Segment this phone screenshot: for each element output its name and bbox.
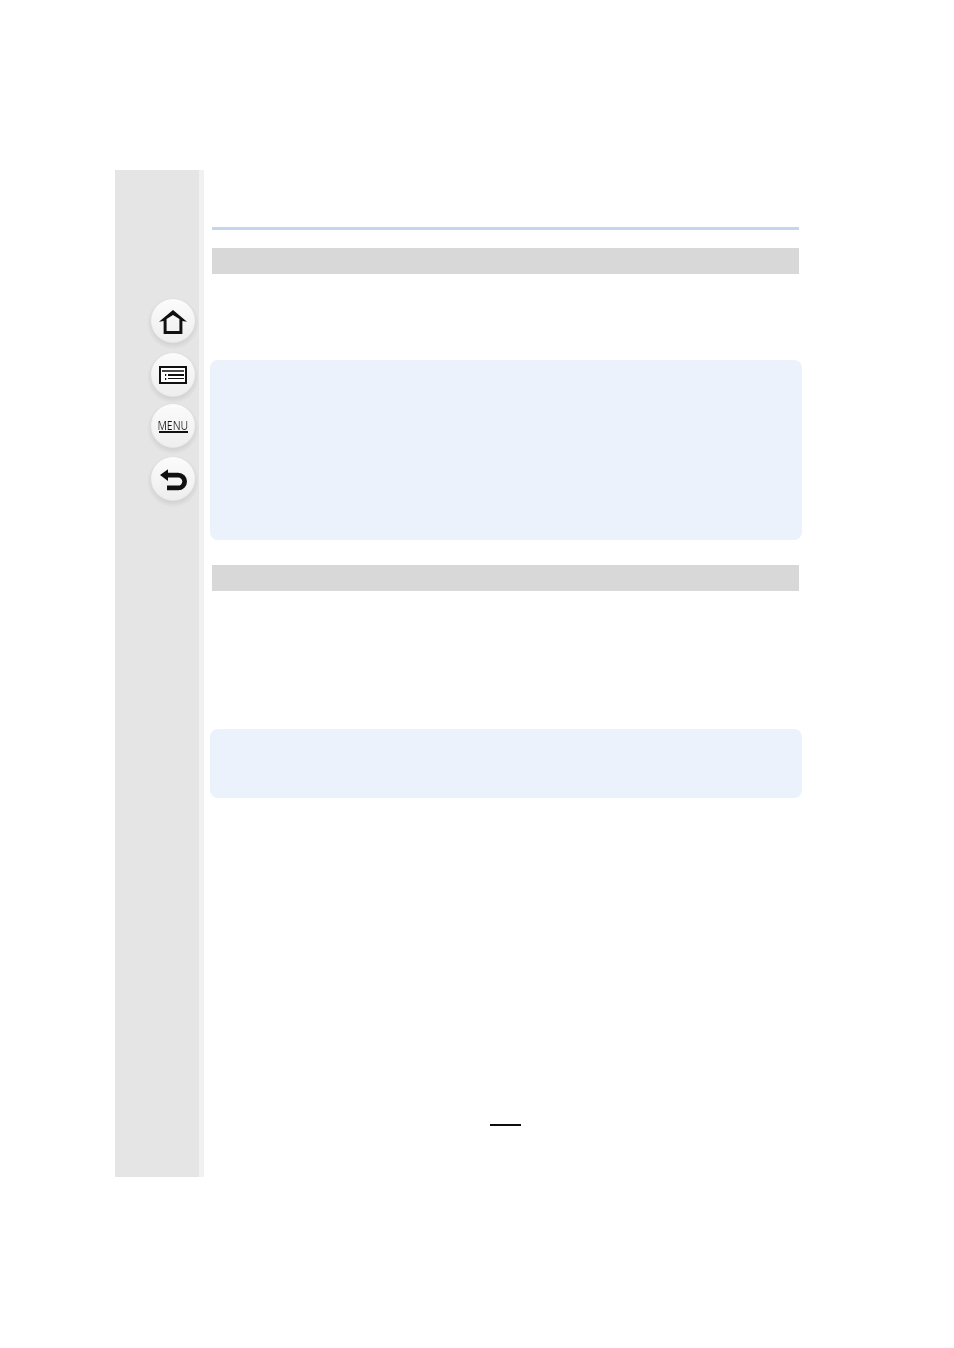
staticText: MENU (157, 416, 189, 434)
button[interactable]: Contents (147, 349, 199, 401)
button[interactable]: Home (147, 295, 199, 347)
button[interactable]: Back (147, 453, 199, 505)
button[interactable]: Menu (147, 400, 199, 452)
